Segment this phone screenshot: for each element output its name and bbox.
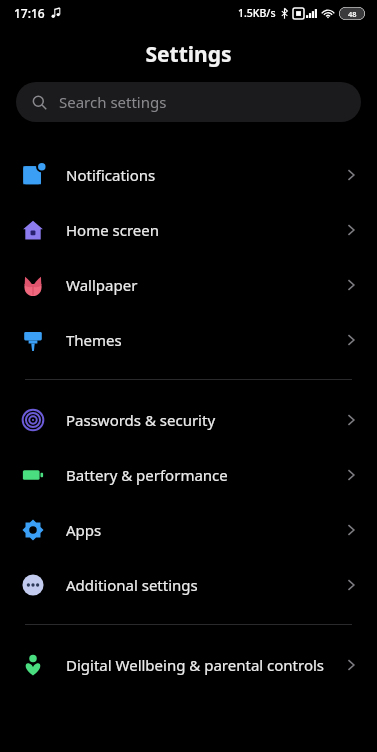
button[interactable]: Themes (0, 312, 377, 367)
button[interactable]: Passwords & security (0, 392, 377, 447)
staticText: Home screen (66, 220, 333, 240)
button[interactable]: Wallpaper (0, 257, 377, 312)
staticText: Passwords & security (66, 410, 333, 430)
button[interactable]: Digital Wellbeing & parental controls (0, 637, 377, 692)
staticText: Battery & performance (66, 465, 333, 485)
staticText: Digital Wellbeing & parental controls (66, 655, 333, 675)
staticText: 48 (348, 9, 357, 19)
staticText: Themes (66, 330, 333, 350)
staticText: Notifications (66, 165, 333, 185)
staticText: Apps (66, 520, 333, 540)
button[interactable]: Apps (0, 502, 377, 557)
staticText: Search settings (59, 92, 167, 112)
staticText: Additional settings (66, 575, 333, 595)
button[interactable]: Search settings (16, 82, 361, 122)
button[interactable]: Additional settings (0, 557, 377, 612)
staticText: Settings (0, 40, 377, 69)
staticText: 1.5KB/s (238, 6, 276, 20)
staticText: 17:16 (14, 5, 45, 21)
staticText: Wallpaper (66, 275, 333, 295)
button[interactable]: Home screen (0, 202, 377, 257)
button[interactable]: Battery & performance (0, 447, 377, 502)
button[interactable]: Notifications (0, 147, 377, 202)
